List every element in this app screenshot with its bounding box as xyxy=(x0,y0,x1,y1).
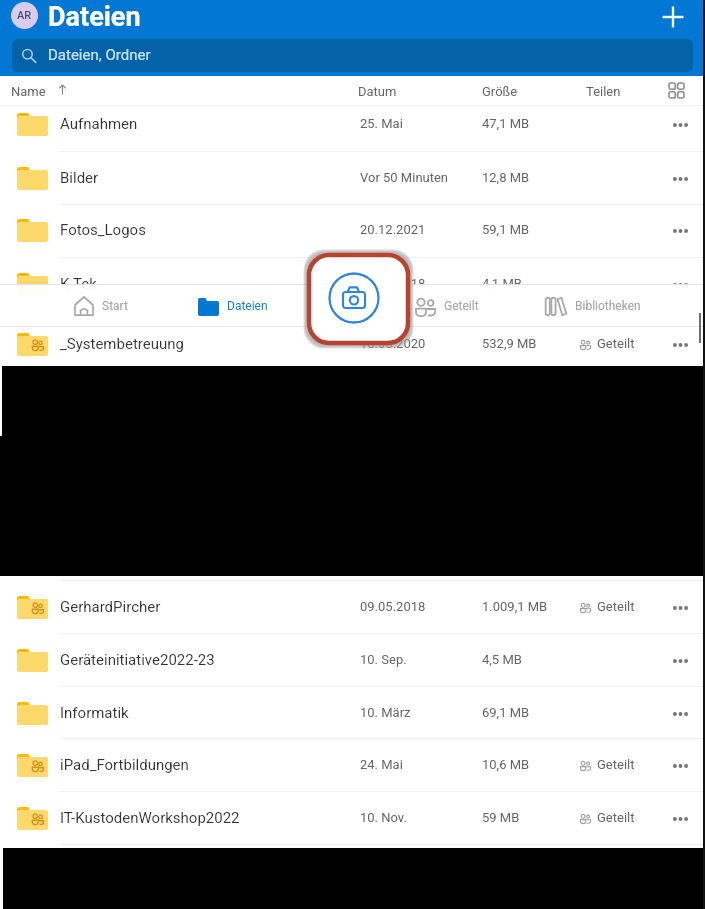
button[interactable]: Add xyxy=(652,0,694,38)
button[interactable]: Aufnahmen xyxy=(0,98,705,151)
staticText: Start xyxy=(102,299,128,313)
staticText: IT-KustodenWorkshop2022 xyxy=(60,809,240,827)
staticText: Geteilt xyxy=(597,810,635,825)
staticText: Informatik xyxy=(60,704,129,722)
button[interactable]: More options xyxy=(661,326,699,364)
button[interactable]: Bilder xyxy=(0,152,705,205)
staticText: Geräteinitiative2022-23 xyxy=(60,651,215,669)
staticText: Bibliotheken xyxy=(575,299,641,313)
staticText: Aufnahmen xyxy=(60,115,138,133)
button[interactable]: More options xyxy=(661,106,699,144)
staticText: 24. Mai xyxy=(360,757,403,772)
staticText: 59,1 MB xyxy=(482,222,530,237)
staticText: 20.12.2021 xyxy=(360,222,426,237)
staticText: Dateien xyxy=(227,299,268,313)
button[interactable]: Fotos_Logos xyxy=(0,204,705,257)
staticText: GerhardPircher xyxy=(60,598,161,616)
staticText: 09.05.2018 xyxy=(360,599,426,614)
button[interactable]: More options xyxy=(661,160,699,198)
button[interactable]: Camera xyxy=(328,272,380,324)
button[interactable]: More options xyxy=(661,589,699,627)
staticText: 25. Mai xyxy=(360,116,403,131)
button[interactable]: Geräteinitiative2022-23 xyxy=(0,634,705,687)
staticText: 59 MB xyxy=(482,810,520,825)
button[interactable]: More options xyxy=(661,266,699,304)
staticText: Teilen xyxy=(586,84,621,99)
staticText: K-Tek xyxy=(60,275,97,293)
button[interactable]: More options xyxy=(661,642,699,680)
staticText: 10. März xyxy=(360,705,411,720)
staticText: Geteilt xyxy=(444,299,479,313)
staticText: 69,1 MB xyxy=(482,705,530,720)
staticText: 532,9 MB xyxy=(482,336,537,351)
button[interactable]: More options xyxy=(661,800,699,838)
staticText: 18.05.2020 xyxy=(360,336,426,351)
staticText: Dateien, Ordner xyxy=(48,46,151,64)
button[interactable]: _Systembetreuung xyxy=(0,318,705,371)
button[interactable]: Dateien xyxy=(184,284,280,327)
button[interactable]: IT-KustodenWorkshop2022 xyxy=(0,792,705,845)
button[interactable]: Account xyxy=(11,2,38,29)
staticText: 47,1 MB xyxy=(482,116,530,131)
button[interactable]: More options xyxy=(661,747,699,785)
staticText: Fotos_Logos xyxy=(60,221,146,239)
staticText: 10. Sep. xyxy=(360,652,407,667)
button[interactable]: Geteilt xyxy=(401,284,493,327)
button[interactable]: Start xyxy=(58,284,146,327)
button[interactable]: Dateien, Ordner xyxy=(12,39,693,72)
staticText: Vor 50 Minuten xyxy=(360,170,449,185)
staticText: 10,6 MB xyxy=(482,757,530,772)
staticText: iPad_Fortbildungen xyxy=(60,756,189,774)
button[interactable]: Bibliotheken xyxy=(531,284,653,327)
staticText: Bilder xyxy=(60,169,99,187)
staticText: Dateien xyxy=(48,1,141,33)
staticText: _Systembetreuung xyxy=(60,335,184,353)
staticText: Größe xyxy=(482,84,518,99)
button[interactable]: iPad_Fortbildungen xyxy=(0,739,705,792)
staticText: Name xyxy=(11,84,46,99)
button[interactable]: K-Tek xyxy=(0,258,705,311)
staticText: 1.009,1 MB xyxy=(482,599,548,614)
button[interactable]: More options xyxy=(661,695,699,733)
button[interactable]: Grid view xyxy=(660,76,693,105)
staticText: 4,1 MB xyxy=(482,276,522,291)
button[interactable]: Informatik xyxy=(0,687,705,740)
button[interactable]: GerhardPircher xyxy=(0,581,705,634)
staticText: AR xyxy=(17,9,32,22)
staticText: 4,5 MB xyxy=(482,652,522,667)
staticText: 07.03.2018 xyxy=(360,276,426,291)
staticText: 10. Nov. xyxy=(360,810,407,825)
staticText: Datum xyxy=(358,84,397,99)
staticText: Geteilt xyxy=(597,757,635,772)
button[interactable]: More options xyxy=(661,212,699,250)
staticText: Geteilt xyxy=(597,336,635,351)
staticText: Geteilt xyxy=(597,599,635,614)
staticText: 12,8 MB xyxy=(482,170,530,185)
